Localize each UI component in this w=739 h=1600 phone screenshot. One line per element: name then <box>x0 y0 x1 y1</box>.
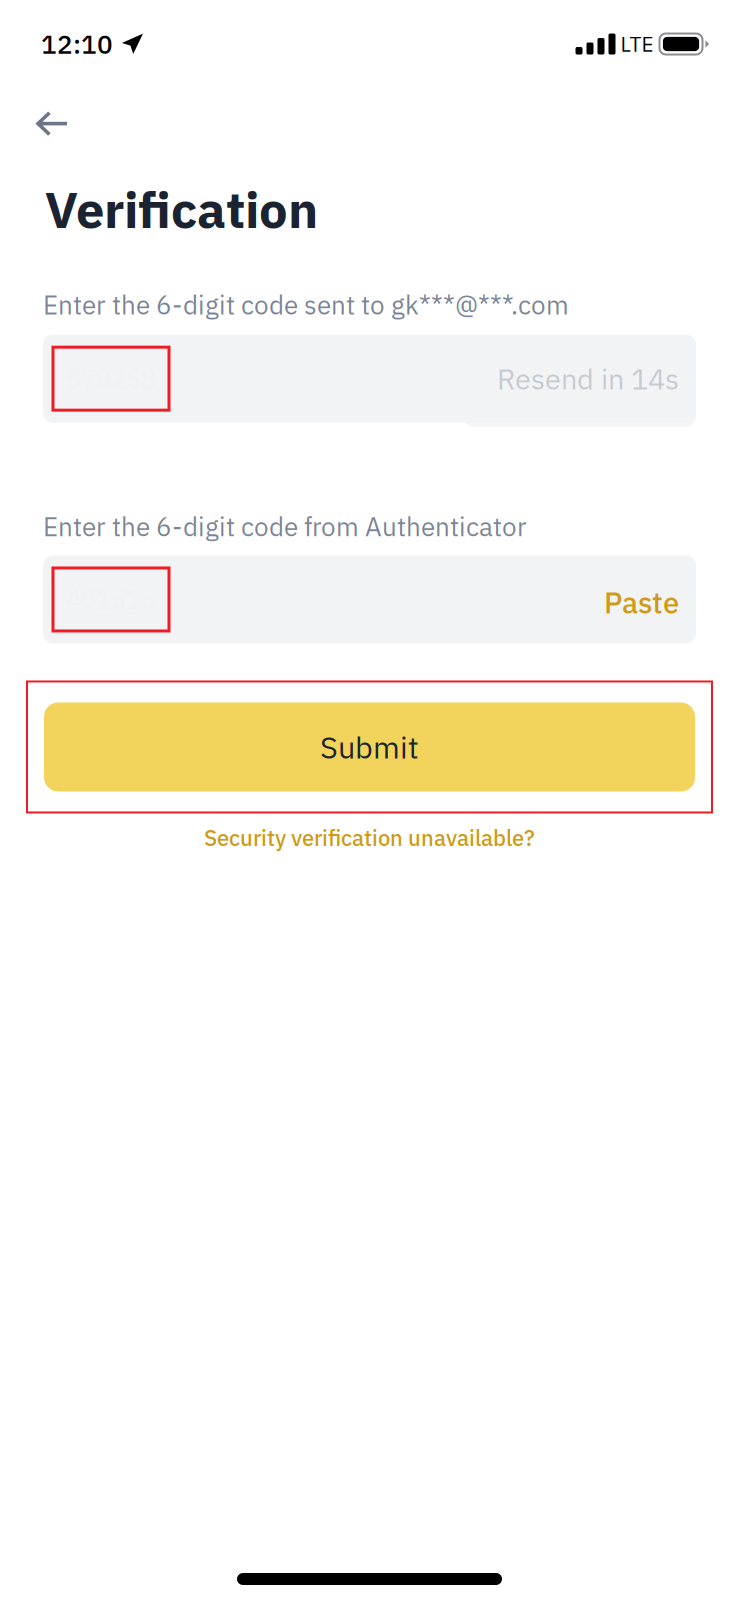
button[interactable]: Security verification unavailable? <box>192 815 547 860</box>
button[interactable]: Code entry field <box>53 347 169 410</box>
staticText: Submit <box>320 727 419 767</box>
button[interactable]: Paste <box>604 555 679 643</box>
staticText: Paste <box>604 583 679 621</box>
staticText: Security verification unavailable? <box>204 823 535 852</box>
staticText: Resend in 14s <box>497 360 679 397</box>
button[interactable]: Resend in 14s <box>497 335 679 423</box>
button[interactable]: Code entry field <box>53 568 169 631</box>
button[interactable]: Submit <box>44 702 695 791</box>
staticText: Enter the 6-digit code from Authenticato… <box>43 510 527 543</box>
staticText: LTE <box>620 31 653 57</box>
staticText: Verification <box>45 176 318 242</box>
button[interactable]: Back <box>30 97 74 150</box>
staticText: Enter the 6-digit code sent to gk***@***… <box>43 288 569 322</box>
staticText: 12:10 <box>41 27 113 61</box>
